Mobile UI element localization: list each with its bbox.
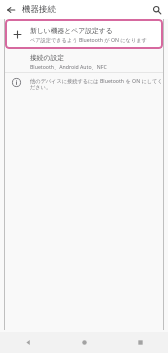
- staticText: 接続の設定: [30, 53, 65, 62]
- staticText: 新しい機器とペア設定する: [30, 26, 113, 35]
- button[interactable]: 新しい機器とペア設定する: [5, 19, 163, 49]
- staticText: Bluetooth、Android Auto、NFC: [30, 63, 107, 70]
- button[interactable]: 戻る: [0, 0, 22, 19]
- button[interactable]: 履歴: [112, 332, 168, 353]
- button[interactable]: 接続の設定: [5, 49, 163, 72]
- button[interactable]: ホーム: [56, 332, 112, 353]
- button[interactable]: 検索: [146, 0, 168, 19]
- button[interactable]: 戻る: [0, 332, 56, 353]
- staticText: ペア設定できるよう Bluetooth が ON になります: [30, 36, 147, 43]
- staticText: 他のデバイスに接続するには Bluetooth を ON にしてください。: [30, 77, 163, 91]
- staticText: 機器接続: [22, 4, 146, 15]
